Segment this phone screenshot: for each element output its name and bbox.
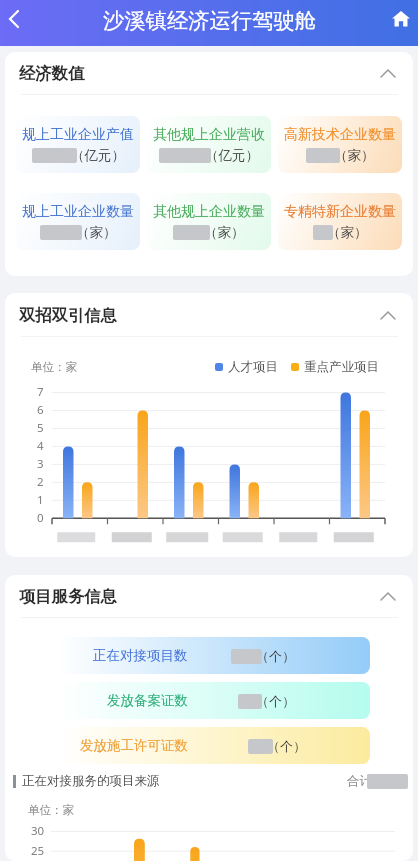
staticText: 人才项目 bbox=[228, 359, 278, 375]
staticText: （个） bbox=[267, 738, 306, 754]
staticText: （个） bbox=[256, 693, 295, 709]
staticText: 经济数值 bbox=[19, 63, 85, 84]
staticText: 重点产业项目 bbox=[304, 359, 379, 375]
button[interactable]: 发放备案证数 bbox=[57, 682, 370, 719]
staticText: 1 bbox=[37, 492, 44, 508]
staticText: 发放施工许可证数 bbox=[80, 737, 188, 754]
button[interactable]: 专精特新企业数量 bbox=[278, 193, 402, 250]
button[interactable]: 双招双引信息 bbox=[5, 293, 413, 337]
staticText: 规上工业企业数量 bbox=[22, 203, 134, 221]
staticText: 专精特新企业数量 bbox=[284, 203, 396, 221]
staticText: （个） bbox=[256, 648, 295, 664]
staticText: 其他规上企业营收 bbox=[153, 126, 265, 144]
button[interactable]: 发放施工许可证数 bbox=[57, 727, 370, 764]
button[interactable]: 正在对接项目数 bbox=[57, 637, 370, 674]
staticText: （家） bbox=[327, 224, 368, 241]
button[interactable]: 规上工业企业产值 bbox=[16, 116, 140, 173]
staticText: （亿元） bbox=[205, 147, 259, 164]
staticText: 正在对接项目数 bbox=[93, 647, 188, 664]
staticText: （家） bbox=[204, 224, 245, 241]
staticText: 规上工业企业产值 bbox=[22, 126, 134, 144]
button[interactable]: 项目服务信息 bbox=[5, 575, 413, 618]
staticText: 单位：家 bbox=[28, 803, 74, 817]
staticText: 双招双引信息 bbox=[19, 305, 117, 326]
staticText: 合计 bbox=[347, 773, 372, 789]
staticText: 其他规上企业数量 bbox=[153, 203, 265, 221]
staticText: 单位：家 bbox=[31, 360, 77, 374]
staticText: （家） bbox=[334, 147, 375, 164]
button[interactable]: 高新技术企业数量 bbox=[278, 116, 402, 173]
staticText: 30 bbox=[31, 823, 45, 839]
staticText: 正在对接服务的项目来源 bbox=[22, 773, 160, 789]
staticText: 25 bbox=[31, 843, 45, 859]
button[interactable]: 经济数值 bbox=[5, 52, 413, 95]
staticText: 6 bbox=[37, 402, 44, 418]
button[interactable]: 其他规上企业数量 bbox=[147, 193, 271, 250]
button[interactable]: 其他规上企业营收 bbox=[147, 116, 271, 173]
staticText: （亿元） bbox=[71, 147, 125, 164]
button[interactable]: 规上工业企业数量 bbox=[16, 193, 140, 250]
staticText: （家） bbox=[76, 224, 117, 241]
staticText: 5 bbox=[37, 420, 44, 436]
staticText: 3 bbox=[37, 456, 44, 472]
staticText: 项目服务信息 bbox=[19, 586, 117, 607]
staticText: 4 bbox=[37, 438, 44, 454]
button[interactable]: Home bbox=[378, 0, 418, 40]
staticText: 发放备案证数 bbox=[107, 692, 188, 709]
staticText: 沙溪镇经济运行驾驶舱 bbox=[103, 7, 316, 34]
button[interactable]: Back bbox=[0, 0, 38, 40]
staticText: 高新技术企业数量 bbox=[284, 126, 396, 144]
staticText: 2 bbox=[37, 474, 44, 490]
staticText: 7 bbox=[37, 384, 44, 400]
staticText: 0 bbox=[37, 510, 44, 526]
